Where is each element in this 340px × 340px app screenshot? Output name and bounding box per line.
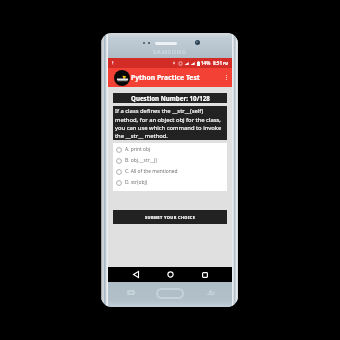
- button[interactable]: SUBMIT YOUR CHOICE: [113, 210, 227, 224]
- button[interactable]: Back: [206, 290, 214, 296]
- button[interactable]: A. print obj: [113, 144, 227, 155]
- button[interactable]: Home: [156, 288, 184, 299]
- staticText: Python Practice Test: [131, 73, 200, 82]
- staticText: D. str(obj): [125, 179, 148, 186]
- button[interactable]: Back: [128, 267, 143, 282]
- staticText: Question Number: 10/128: [131, 94, 210, 102]
- staticText: 8:51: [213, 60, 222, 66]
- button[interactable]: Recent apps: [197, 267, 212, 282]
- button[interactable]: B. obj.__str__(): [113, 155, 227, 166]
- staticText: A. print obj: [125, 146, 151, 153]
- button[interactable]: C. All of the mentioned: [113, 166, 227, 177]
- staticText: SAMSUNG: [153, 48, 187, 56]
- button[interactable]: D. str(obj): [113, 177, 227, 188]
- staticText: B. obj.__str__(): [125, 157, 157, 164]
- staticText: C. All of the mentioned: [125, 168, 178, 175]
- staticText: SUBMIT YOUR CHOICE: [145, 215, 196, 220]
- staticText: PM: [223, 61, 229, 66]
- button[interactable]: More options: [221, 68, 232, 87]
- staticText: 14%: [201, 60, 211, 66]
- button[interactable]: Home: [163, 267, 178, 282]
- staticText: If a class defines the __str__(self) met…: [115, 107, 225, 139]
- button[interactable]: Recent apps: [127, 290, 135, 295]
